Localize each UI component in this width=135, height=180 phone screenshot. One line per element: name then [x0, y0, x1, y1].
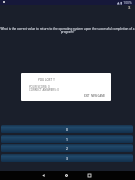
- staticText: 2: [66, 146, 68, 151]
- button[interactable]: Back: [32, 171, 55, 180]
- staticText: What is the correct value to return to t…: [0, 27, 135, 31]
- button[interactable]: 1: [1, 135, 133, 143]
- staticText: 3: [128, 5, 131, 11]
- button[interactable]: 3: [1, 154, 133, 162]
- staticText: program?: [0, 30, 135, 34]
- staticText: NEW GAME: [91, 94, 105, 98]
- button[interactable]: Recent apps: [78, 171, 101, 180]
- staticText: 1: [66, 137, 68, 142]
- staticText: YOU LOST !!: [38, 78, 55, 82]
- staticText: 3: [66, 156, 68, 161]
- button[interactable]: EXIT: [82, 93, 92, 99]
- staticText: CORRECT ANSWERS: 0: [29, 88, 59, 92]
- button[interactable]: NEW GAME: [89, 93, 107, 99]
- button[interactable]: Home: [55, 171, 78, 180]
- button[interactable]: 0: [1, 125, 133, 133]
- staticText: ▲ ▮ 100%: [117, 0, 132, 5]
- button[interactable]: 2: [1, 144, 133, 152]
- staticText: YOUR SCORE: 0: [29, 85, 50, 89]
- staticText: 0: [66, 127, 68, 132]
- staticText: EXIT: [84, 94, 90, 98]
